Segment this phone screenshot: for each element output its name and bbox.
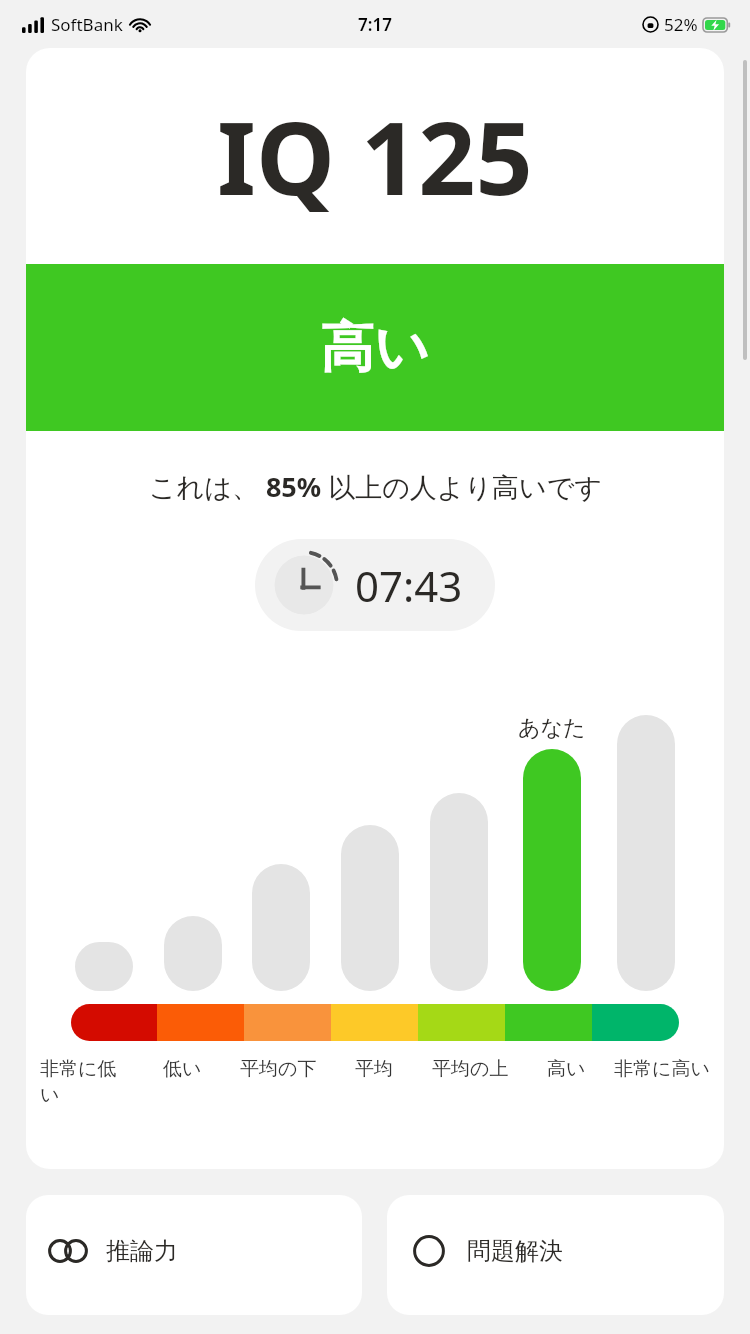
staticText: 07:43 [355,557,463,614]
staticText: IQ 125 [217,88,533,224]
staticText: 平均の下 [240,1057,317,1081]
staticText: 問題解決 [467,1236,563,1266]
button[interactable]: 推論力 [26,1195,362,1315]
staticText: これは、 85% 以上の人より高いです [149,468,602,505]
button[interactable]: 07:43 [255,539,495,631]
staticText: あなた [518,714,586,742]
staticText: 7:17 [358,13,392,36]
staticText: 高い [547,1057,586,1081]
staticText: 非常に低い [40,1057,135,1107]
staticText: SoftBank [51,13,123,36]
staticText: 非常に高い [614,1057,710,1081]
staticText: 推論力 [106,1236,178,1266]
staticText: 52% [664,13,698,36]
staticText: 平均の上 [432,1057,509,1081]
staticText: 低い [163,1057,202,1081]
button[interactable]: 問題解決 [387,1195,724,1315]
staticText: 高い [320,314,430,382]
staticText: 平均 [355,1057,393,1081]
